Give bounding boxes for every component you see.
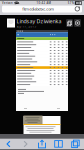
staticText: fitmediabetxc.com [22,6,54,12]
button[interactable]: Back [0,138,17,149]
button[interactable]: fitmediabetxc.com [2,5,82,12]
button[interactable]: Tabs [67,138,84,149]
button[interactable]: Open in app [73,19,81,27]
button[interactable]: Share [34,138,50,149]
staticText: Sep 17, 2019 [16,25,36,28]
staticText: 57% [68,1,74,5]
button[interactable]: Forward [17,138,34,149]
staticText: Verizon [2,1,13,5]
staticText: Lindsay Dziwienka [16,18,61,25]
button[interactable]: Bookmarks [50,138,67,149]
button[interactable]: Duplicate [66,19,73,27]
staticText: 10:42 AM [37,1,51,5]
